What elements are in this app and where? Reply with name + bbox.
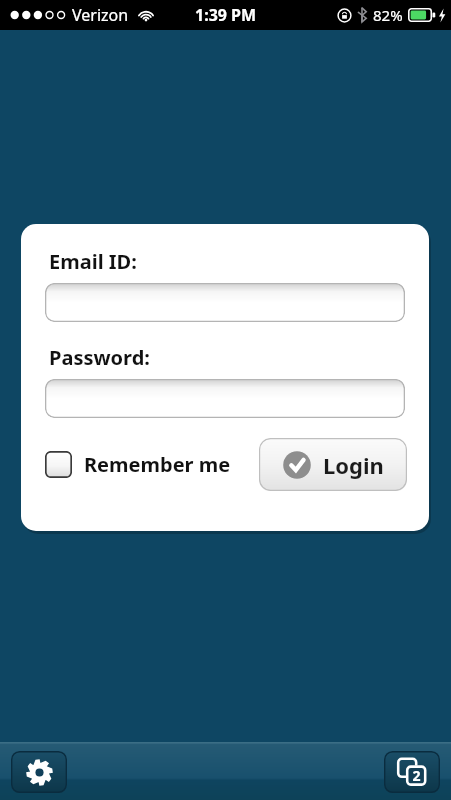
staticText: 82% xyxy=(373,5,403,25)
staticText: Email ID: xyxy=(49,248,137,275)
button[interactable]: Settings xyxy=(11,751,67,793)
staticText: 2 xyxy=(412,766,421,785)
staticText: Login xyxy=(323,450,384,480)
button[interactable]: Remember me xyxy=(45,451,231,478)
button[interactable] xyxy=(45,379,405,418)
staticText: 1:39 PM xyxy=(195,4,257,26)
button[interactable]: Tabs, 2 open xyxy=(384,751,440,793)
button[interactable] xyxy=(45,283,405,322)
staticText: Password: xyxy=(49,344,150,371)
button[interactable]: Login xyxy=(259,438,407,491)
staticText: Remember me xyxy=(84,451,231,478)
staticText: Verizon xyxy=(72,4,129,26)
